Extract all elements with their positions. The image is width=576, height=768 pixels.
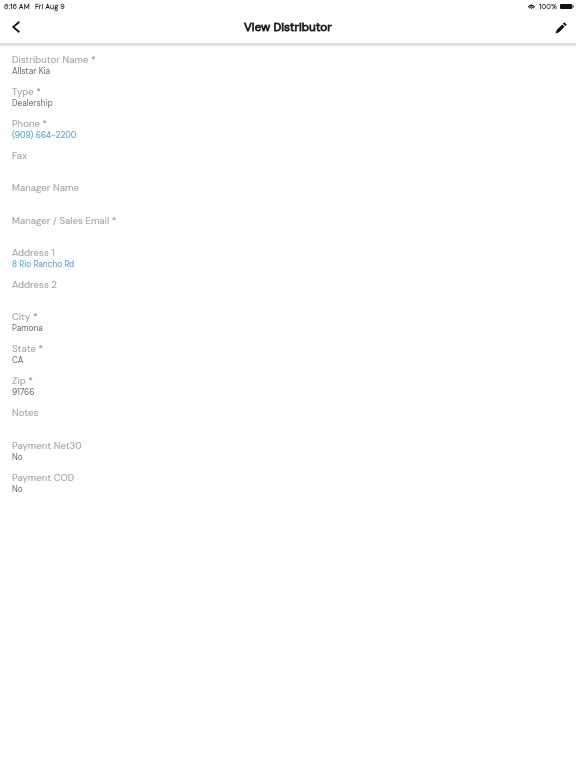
button[interactable]: Edit [551,18,571,38]
button[interactable]: Address 2 [0,278,576,310]
button[interactable]: 8 Rio Rancho Rd [12,259,75,270]
button[interactable]: Fax [0,149,576,181]
staticText: State * [12,342,44,354]
button[interactable]: (909) 664-2200 [12,130,77,141]
staticText: Type * [12,85,41,97]
button[interactable]: Payment Net30 [0,439,576,471]
staticText: Manager Name [12,181,79,193]
staticText: View Distributor [244,19,332,34]
staticText: CA [12,355,24,366]
staticText: Allstar Kia [12,66,51,77]
button[interactable]: Payment COD [0,471,576,503]
staticText: Manager / Sales Email * [12,214,117,226]
button[interactable]: Address 1 [0,246,576,278]
staticText: Phone * [12,117,48,129]
staticText: Dealership [12,98,53,109]
staticText: No [12,484,23,495]
button[interactable]: State * [0,342,576,374]
staticText: Payment Net30 [12,439,82,451]
staticText: City * [12,310,38,322]
button[interactable]: Distributor Name * [0,53,576,85]
staticText: Zip * [12,374,33,386]
button[interactable]: City * [0,310,576,342]
staticText: 6:16 AM [4,2,30,11]
staticText: Pamona [12,323,43,334]
staticText: 91766 [12,387,35,398]
staticText: Fax [12,149,27,161]
staticText: View Distributor [244,19,332,34]
button[interactable]: Type * [0,85,576,117]
button[interactable]: Zip * [0,374,576,406]
staticText: No [12,452,23,463]
button[interactable]: Phone * [0,117,576,149]
staticText: Address 2 [12,278,58,290]
button[interactable]: Manager Name [0,181,576,213]
staticText: Payment COD [12,471,75,483]
staticText: Address 1 [12,246,55,258]
staticText: Fri Aug 9 [35,2,65,11]
staticText: Distributor Name * [12,53,96,65]
button[interactable]: Notes [0,406,576,438]
button[interactable]: Back [6,17,26,37]
button[interactable]: Manager / Sales Email * [0,214,576,246]
staticText: Notes [12,406,39,418]
staticText: 100% [539,2,557,11]
